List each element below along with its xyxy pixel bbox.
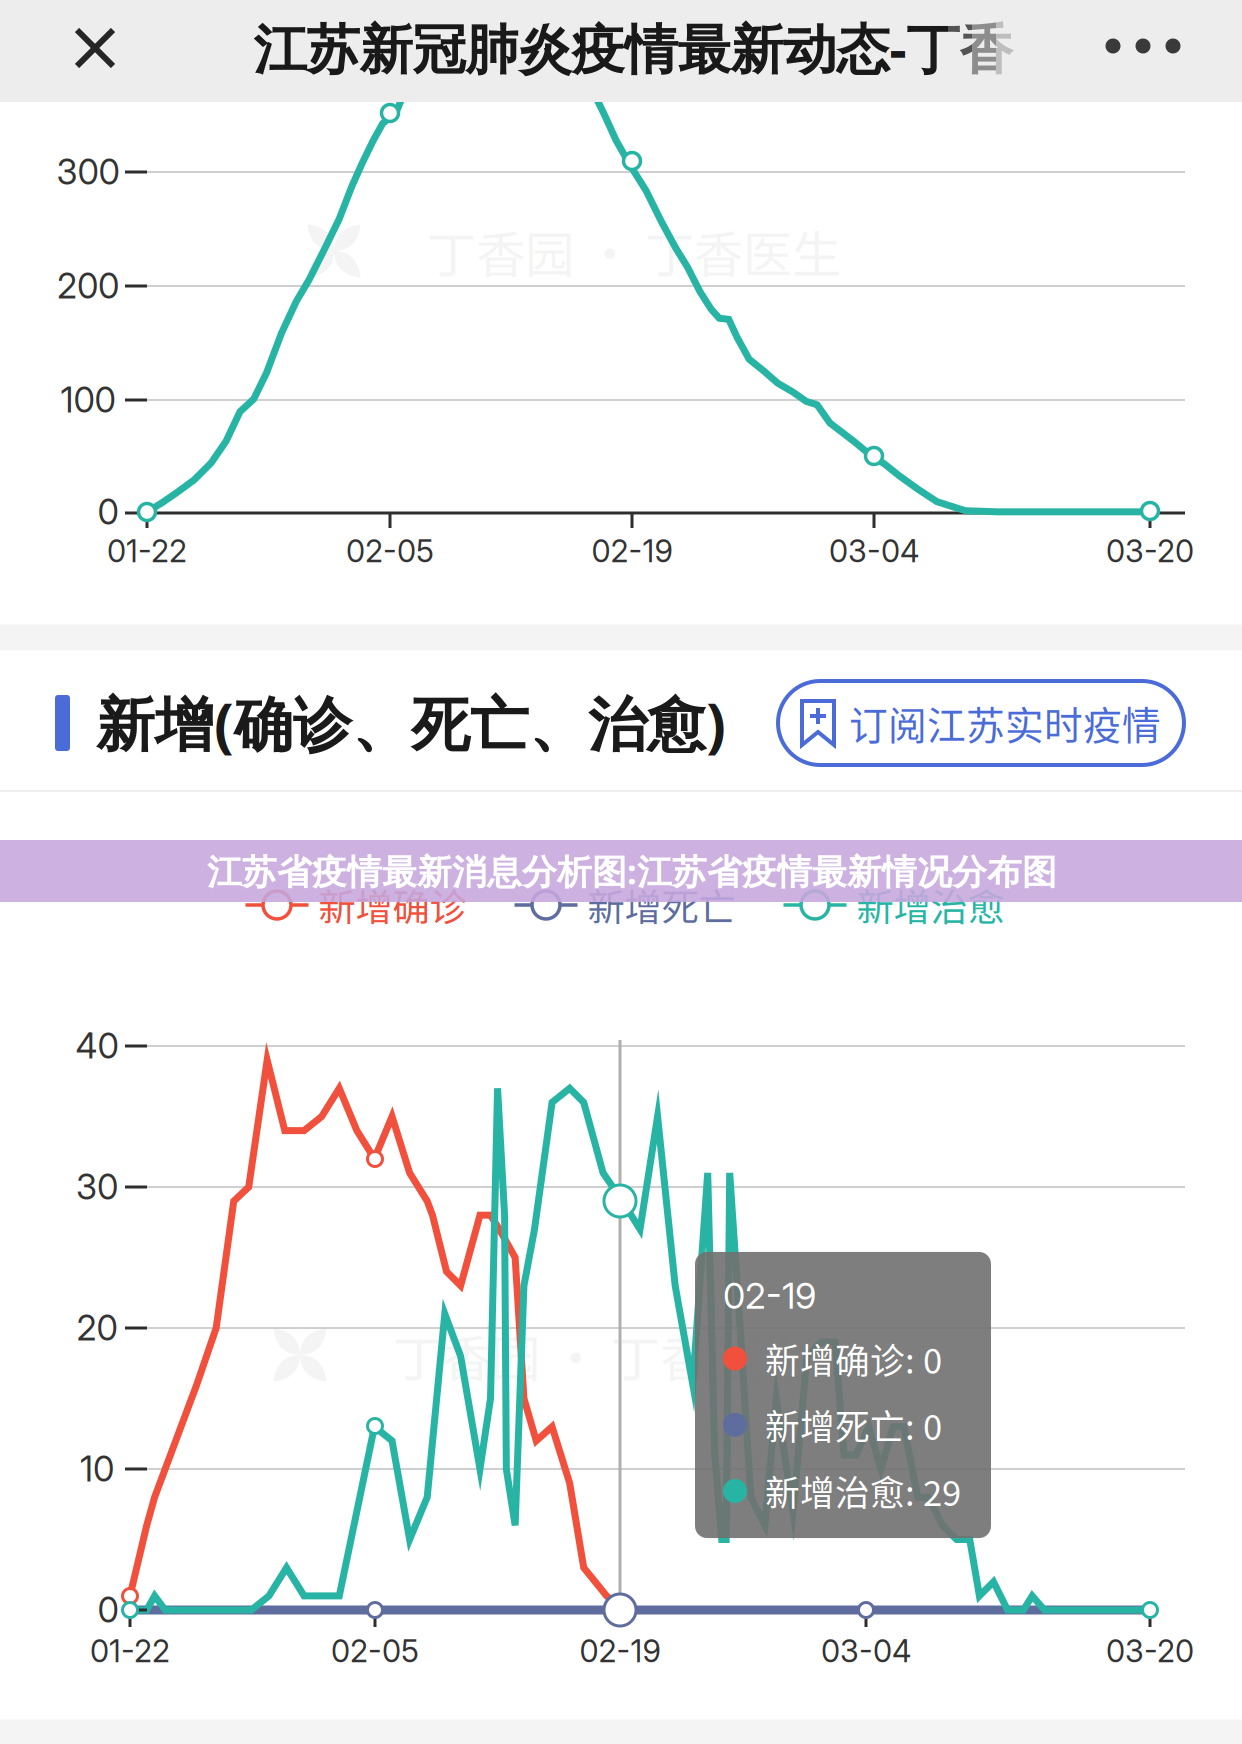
staticText: 江苏省疫情最新消息分析图:江苏省疫情最新情况分布图 [207,847,1057,895]
staticText: 02-19 [723,1274,816,1317]
staticText: 03-20 [1106,1632,1194,1669]
staticText: 江苏新冠肺炎疫情最新动态-丁香 [253,12,1012,84]
staticText: 新增治愈 [856,878,1004,932]
staticText: 新增确诊 [318,878,466,932]
staticText: 新增死亡 [587,878,735,932]
staticText: 订阅江苏实时疫情 [849,695,1161,751]
staticText: 20 [76,1307,117,1349]
staticText: 200 [57,265,119,307]
staticText: 03-04 [829,532,919,569]
staticText: 02-19 [579,1632,660,1669]
staticText: 新增死亡: 0 [765,1400,942,1450]
staticText: 新增确诊: 0 [765,1333,942,1384]
staticText: 02-05 [346,532,434,569]
staticText: 01-22 [90,1632,170,1669]
staticText: 0 [97,491,118,533]
staticText: 02-05 [331,1632,419,1669]
button[interactable]: More options [1083,0,1203,92]
staticText: 0 [97,1589,118,1631]
staticText: 新增治愈: 29 [765,1466,961,1516]
staticText: 300 [56,151,119,193]
staticText: 02-19 [591,532,672,569]
staticText: 10 [80,1448,114,1490]
staticText: 100 [60,379,115,421]
staticText: 丁香园 · 丁香医生 [393,1319,807,1391]
staticText: 03-04 [821,1632,911,1669]
staticText: 03-20 [1106,532,1194,569]
button[interactable]: 订阅江苏实时疫情 [778,681,1184,765]
staticText: 丁香园 · 丁香医生 [427,215,841,287]
button[interactable]: Close [49,2,141,94]
staticText: 30 [76,1166,118,1208]
staticText: 40 [75,1025,118,1067]
staticText: 01-22 [107,532,187,569]
staticText: 新增(确诊、死亡、治愈) [96,683,726,763]
